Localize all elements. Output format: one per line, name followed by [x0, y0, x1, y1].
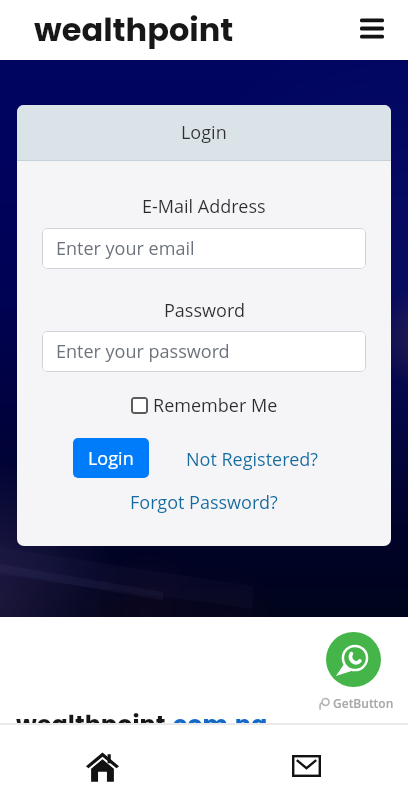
staticText: Not Registered?	[186, 447, 318, 472]
staticText: wealthpoint	[16, 708, 166, 742]
button[interactable]: Contact	[204, 723, 408, 800]
button[interactable]: Enter your email	[42, 228, 366, 269]
button[interactable]: Enter your password	[42, 331, 366, 372]
staticText: Forgot Password?	[130, 490, 278, 515]
staticText: E-Mail Address	[142, 194, 266, 219]
button[interactable]: Not Registered?	[186, 447, 318, 472]
button[interactable]: Remember Me	[131, 393, 278, 418]
button[interactable]: wealthpoint	[34, 7, 234, 52]
staticText: Password	[164, 298, 245, 323]
staticText: GetButton	[333, 695, 394, 711]
staticText: Remember Me	[153, 393, 278, 418]
staticText: .com.ng	[166, 708, 268, 742]
button[interactable]: Chat on WhatsApp	[326, 632, 381, 687]
staticText: Enter your password	[56, 339, 230, 364]
staticText: Login	[88, 446, 134, 471]
button[interactable]: Login	[73, 438, 149, 478]
button[interactable]: Menu	[350, 6, 394, 50]
staticText: Login	[181, 120, 227, 145]
button[interactable]: Home	[0, 723, 204, 800]
button[interactable]: Forgot Password?	[130, 490, 278, 515]
staticText: Enter your email	[56, 236, 195, 261]
